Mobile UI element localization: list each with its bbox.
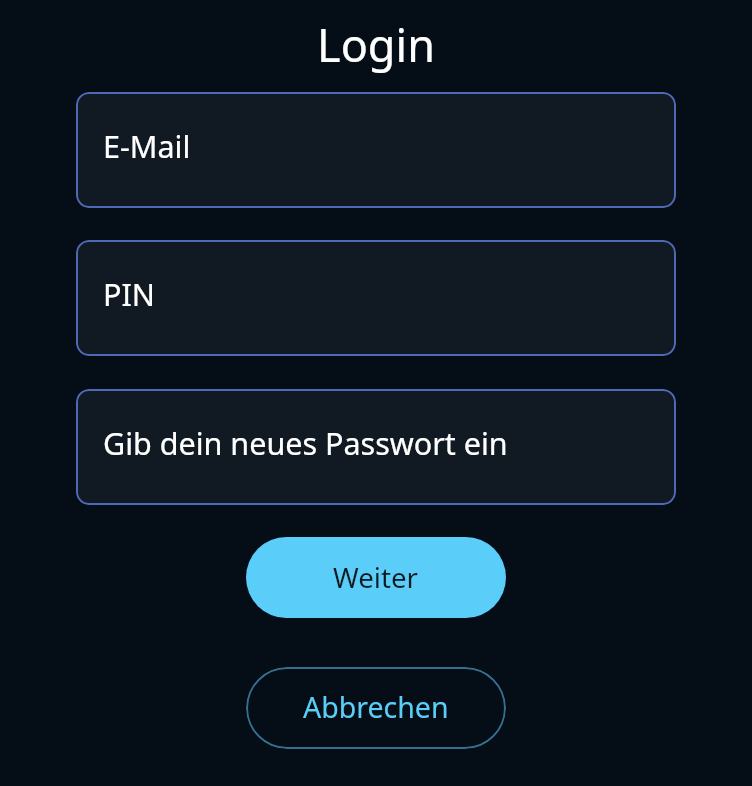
button[interactable]: Gib dein neues Passwort ein bbox=[76, 389, 676, 505]
staticText: Gib dein neues Passwort ein bbox=[103, 422, 508, 464]
staticText: PIN bbox=[103, 273, 155, 315]
button[interactable]: Abbrechen bbox=[246, 667, 506, 749]
button[interactable]: PIN bbox=[76, 240, 676, 356]
staticText: Login bbox=[317, 14, 435, 75]
staticText: E-Mail bbox=[103, 125, 191, 167]
staticText: Abbrechen bbox=[303, 688, 449, 727]
staticText: Weiter bbox=[333, 558, 419, 596]
button[interactable]: E-Mail bbox=[76, 92, 676, 208]
button[interactable]: Weiter bbox=[246, 537, 506, 618]
